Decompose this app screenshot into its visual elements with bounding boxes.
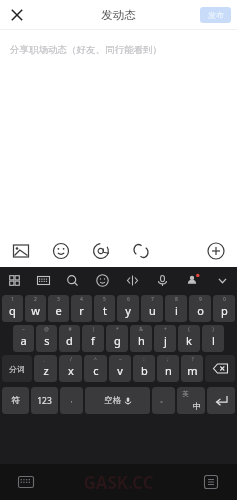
button[interactable]: 7 <box>141 295 163 322</box>
staticText: 1 <box>11 296 14 303</box>
button[interactable]: Keyboard layout <box>29 267 58 293</box>
staticText: 中 <box>193 401 201 411</box>
button[interactable]: Search <box>58 267 87 293</box>
button[interactable]: 6 <box>117 295 139 322</box>
button[interactable]: Emoji <box>87 267 117 293</box>
button[interactable]: & <box>130 325 152 352</box>
button[interactable]: Close <box>5 3 29 27</box>
button[interactable]: ， <box>60 387 83 414</box>
staticText: 。 <box>160 395 167 404</box>
staticText: ~ <box>119 356 122 363</box>
button[interactable]: Enter <box>207 387 235 414</box>
staticText: ( <box>188 326 190 333</box>
staticText: ^ <box>94 356 97 363</box>
button[interactable]: 空格 <box>85 387 150 414</box>
button[interactable]: Emoji <box>52 242 70 260</box>
button[interactable]: 8 <box>165 295 187 322</box>
button[interactable]: / <box>59 355 82 382</box>
staticText: i <box>175 303 178 318</box>
staticText: 0 <box>223 296 226 303</box>
staticText: ? <box>191 356 194 363</box>
button[interactable]: ~ <box>13 325 34 352</box>
button[interactable]: 英 <box>177 387 205 414</box>
button[interactable]: @ <box>36 325 57 352</box>
staticText: 符 <box>11 395 20 406</box>
button[interactable]: * <box>106 325 128 352</box>
button[interactable]: 符 <box>2 387 29 414</box>
button[interactable]: 分词 <box>2 355 32 382</box>
button[interactable]: Voice input <box>147 267 177 293</box>
button[interactable]: ) <box>202 325 224 352</box>
staticText: 、 <box>43 356 48 362</box>
button[interactable]: 发布 <box>200 7 231 23</box>
button[interactable]: | <box>82 325 104 352</box>
button[interactable]: Mention <box>92 242 110 260</box>
button[interactable]: Grid <box>0 267 29 293</box>
staticText: l <box>212 333 215 348</box>
staticText: ; <box>167 356 169 363</box>
button[interactable]: Link <box>132 242 150 260</box>
button[interactable]: 、 <box>34 355 57 382</box>
staticText: e <box>55 303 62 318</box>
staticText: q <box>9 303 16 318</box>
button[interactable]: + <box>154 325 176 352</box>
staticText: s <box>44 333 50 348</box>
button[interactable]: ; <box>157 355 179 382</box>
staticText: j <box>164 333 167 348</box>
button[interactable]: 9 <box>189 295 211 322</box>
staticText: g <box>114 333 121 348</box>
button[interactable]: 2 <box>25 295 46 322</box>
staticText: ， <box>68 395 75 404</box>
button[interactable]: Keyboard <box>18 474 34 490</box>
staticText: / <box>70 356 72 363</box>
button[interactable]: Profile <box>177 267 207 293</box>
staticText: 分享职场动态（好友、同行能看到） <box>10 44 162 56</box>
staticText: & <box>139 326 143 333</box>
staticText: | <box>92 326 95 333</box>
staticText: p <box>221 303 228 318</box>
staticText: 发布 <box>208 10 224 20</box>
staticText: 发动态 <box>101 8 136 22</box>
staticText: o <box>197 303 204 318</box>
staticText: c <box>93 363 99 378</box>
button[interactable]: Recents <box>203 474 219 490</box>
staticText: # <box>68 326 72 333</box>
button[interactable]: 1 <box>2 295 23 322</box>
staticText: 5 <box>103 296 106 303</box>
button[interactable]: Hide keyboard <box>207 267 237 293</box>
button[interactable]: 0 <box>213 295 235 322</box>
button[interactable]: Add image <box>12 242 30 260</box>
button[interactable]: Backspace <box>205 355 235 382</box>
staticText: v <box>117 363 123 378</box>
button[interactable]: 3 <box>48 295 69 322</box>
staticText: 4 <box>80 296 83 303</box>
staticText: r <box>79 303 84 318</box>
staticText: 3 <box>57 296 60 303</box>
staticText: z <box>43 363 49 378</box>
staticText: 英 <box>182 390 189 398</box>
staticText: y <box>125 303 131 318</box>
staticText: f <box>91 333 95 348</box>
button[interactable]: 。 <box>152 387 175 414</box>
staticText: m <box>187 363 198 378</box>
staticText: t <box>103 303 107 318</box>
button[interactable]: 123 <box>31 387 58 414</box>
staticText: * <box>116 326 119 333</box>
staticText: GASK.CC <box>83 471 154 494</box>
button[interactable]: ? <box>181 355 203 382</box>
button[interactable]: : <box>133 355 155 382</box>
staticText: 9 <box>199 296 202 303</box>
staticText: 空格 <box>104 395 121 406</box>
button[interactable]: ( <box>178 325 200 352</box>
staticText: u <box>149 303 156 318</box>
staticText: x <box>68 363 74 378</box>
button[interactable]: ^ <box>84 355 107 382</box>
button[interactable]: 5 <box>94 295 115 322</box>
button[interactable]: Text tools <box>117 267 147 293</box>
button[interactable]: # <box>59 325 80 352</box>
staticText: : <box>143 356 145 363</box>
button[interactable]: ~ <box>109 355 131 382</box>
staticText: a <box>20 333 27 348</box>
button[interactable]: 4 <box>71 295 92 322</box>
button[interactable]: More <box>207 242 225 260</box>
